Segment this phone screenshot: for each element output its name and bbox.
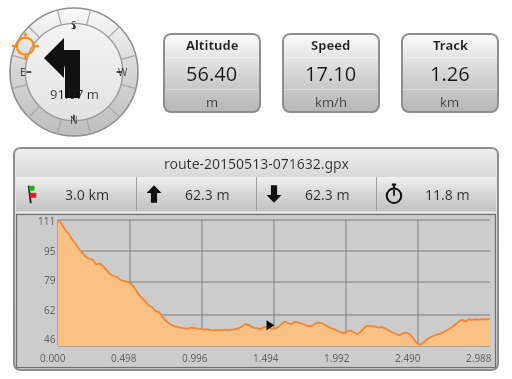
staticText: route-20150513-071632.gpx bbox=[164, 154, 349, 173]
button[interactable]: Altitude bbox=[163, 33, 261, 113]
staticText: N bbox=[70, 113, 78, 127]
staticText: 0.498 bbox=[111, 351, 137, 365]
staticText: 62.3 m bbox=[305, 185, 350, 204]
staticText: 0.000 bbox=[40, 351, 66, 365]
staticText: 11.8 m bbox=[425, 185, 470, 204]
button[interactable]: Ascent bbox=[143, 177, 250, 211]
button[interactable]: Distance bbox=[22, 177, 130, 211]
staticText: Altitude bbox=[186, 36, 239, 54]
button[interactable]: Duration bbox=[383, 177, 490, 211]
button[interactable]: Speed bbox=[282, 33, 380, 113]
staticText: Speed bbox=[311, 36, 351, 54]
button[interactable]: Compass heading bbox=[8, 6, 140, 138]
staticText: 91.07 m bbox=[50, 85, 99, 103]
staticText: E bbox=[20, 65, 26, 79]
staticText: 46 bbox=[44, 332, 56, 346]
staticText: km/h bbox=[315, 93, 347, 111]
staticText: 62.3 m bbox=[185, 185, 230, 204]
button[interactable]: route-20150513-071632.gpx bbox=[16, 150, 496, 177]
button[interactable]: Descent bbox=[263, 177, 370, 211]
staticText: 1.992 bbox=[324, 351, 350, 365]
staticText: 2.490 bbox=[395, 351, 421, 365]
staticText: Track bbox=[433, 36, 468, 54]
staticText: 62 bbox=[44, 303, 56, 317]
staticText: 95 bbox=[44, 244, 56, 258]
button[interactable]: 111 bbox=[16, 214, 496, 368]
staticText: m bbox=[206, 93, 219, 111]
staticText: 2.988 bbox=[466, 351, 492, 365]
staticText: S bbox=[71, 18, 77, 32]
staticText: W bbox=[118, 65, 128, 79]
staticText: 17.10 bbox=[305, 60, 357, 87]
staticText: 3.0 km bbox=[65, 185, 109, 204]
staticText: 1.26 bbox=[430, 60, 470, 87]
staticText: km bbox=[440, 93, 460, 111]
staticText: 111 bbox=[38, 214, 56, 228]
staticText: 56.40 bbox=[186, 60, 238, 87]
staticText: 0.996 bbox=[182, 351, 208, 365]
staticText: 79 bbox=[44, 273, 56, 287]
button[interactable]: Track bbox=[401, 33, 499, 113]
staticText: 1.494 bbox=[253, 351, 279, 365]
